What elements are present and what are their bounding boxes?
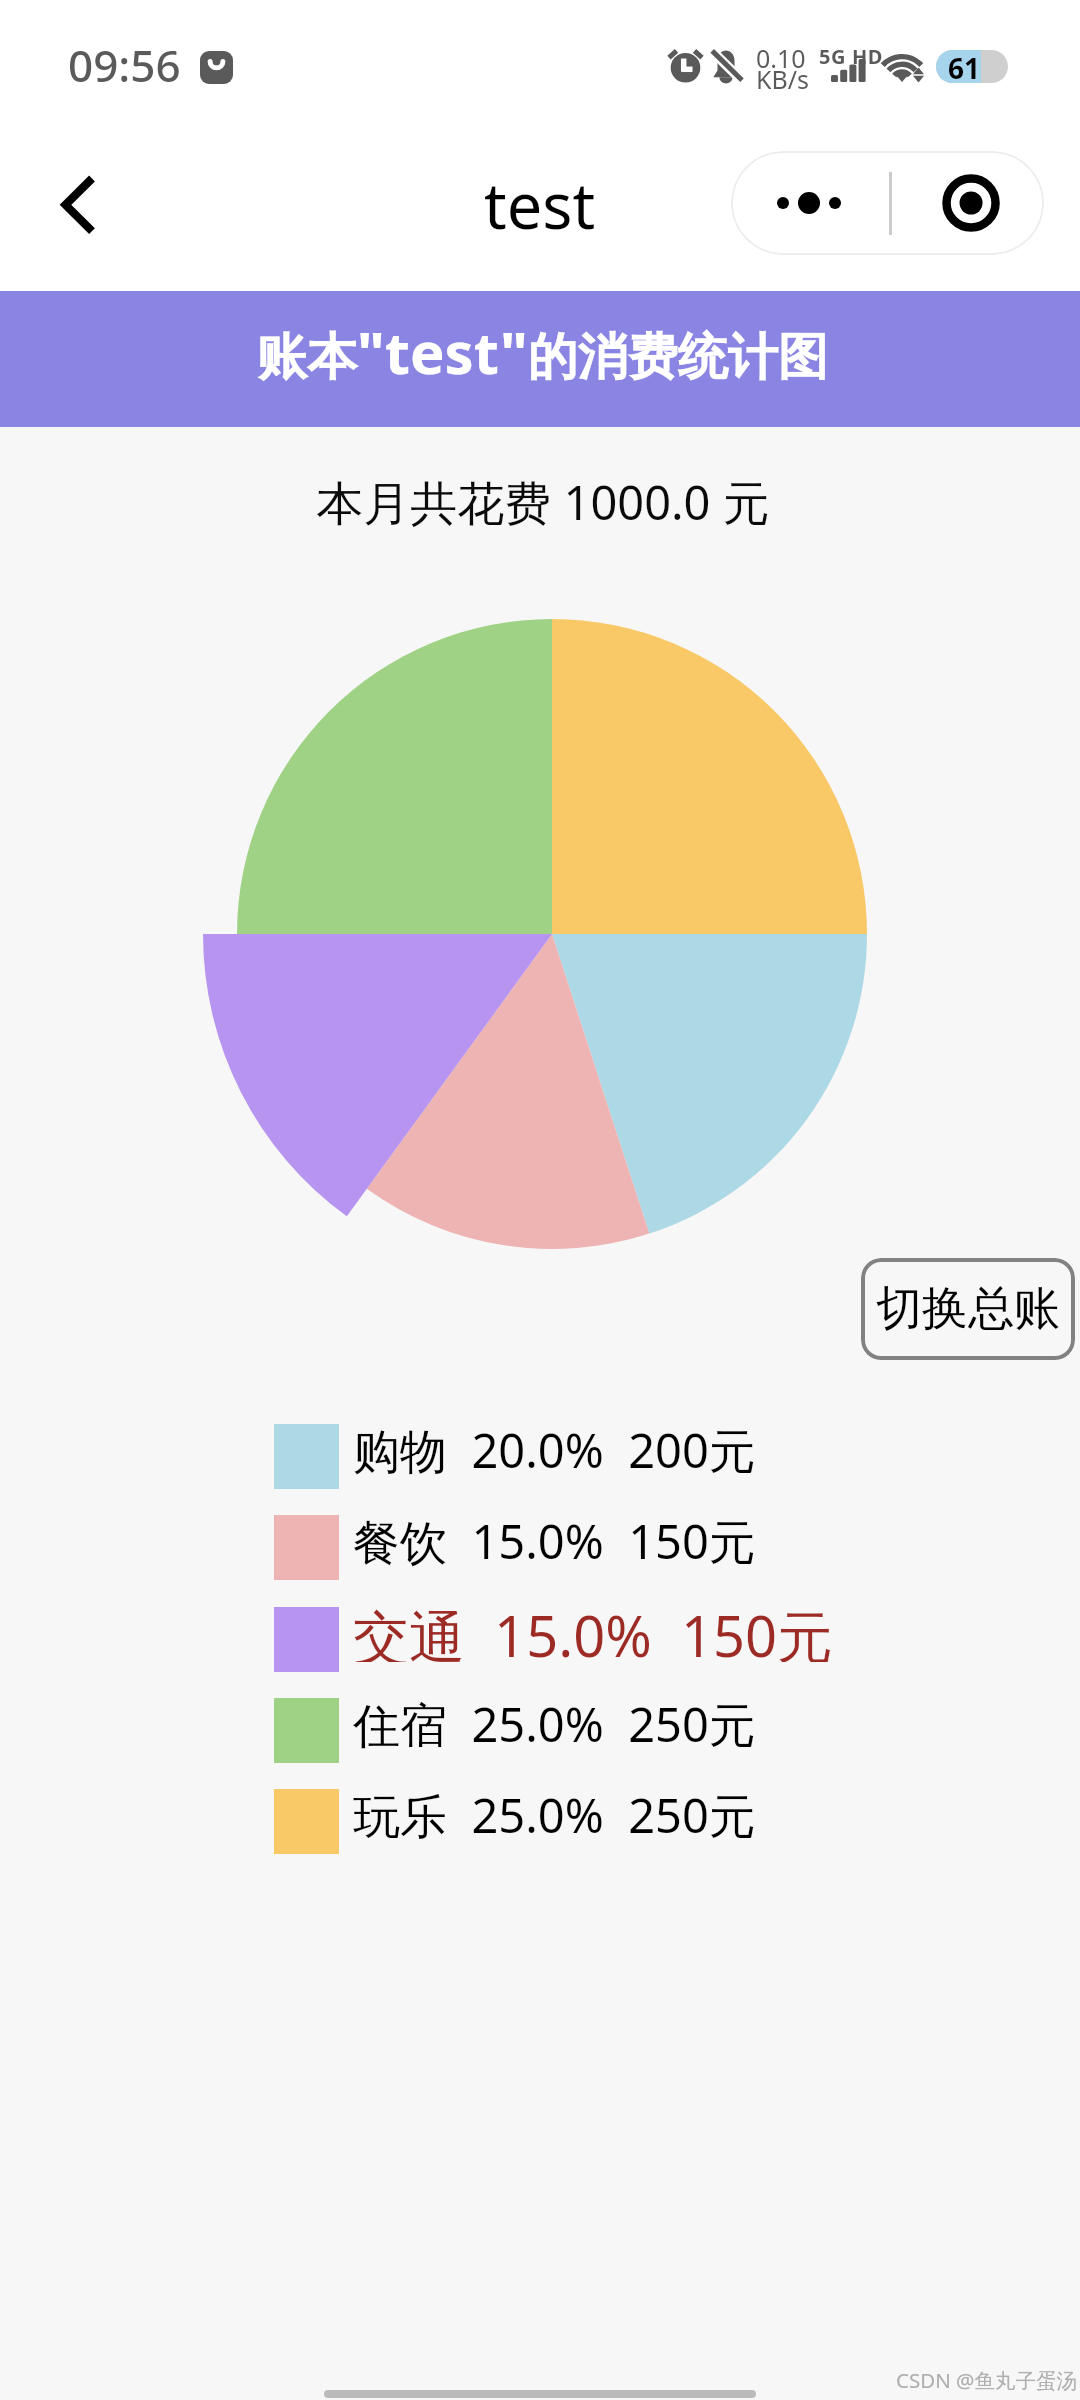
button[interactable]: 消费统计饼图 bbox=[203, 585, 901, 1285]
button[interactable]: Close bbox=[892, 151, 1044, 255]
staticText: 切换总账 bbox=[876, 1280, 1060, 1338]
staticText: test bbox=[484, 162, 596, 248]
staticText: 09:56 bbox=[68, 35, 181, 95]
staticText: 住宿 25.0% 250元 bbox=[353, 1692, 756, 1756]
button[interactable]: 住宿 25.0% 250元 bbox=[274, 1698, 756, 1763]
button[interactable]: More bbox=[731, 151, 889, 255]
staticText: 交通 15.0% 150元 bbox=[353, 1597, 833, 1662]
button[interactable]: 交通 15.0% 150元 bbox=[274, 1607, 833, 1672]
staticText: CSDN @鱼丸子蛋汤 bbox=[896, 2366, 1078, 2394]
staticText: 餐饮 15.0% 150元 bbox=[353, 1509, 756, 1573]
button[interactable]: 切换总账 bbox=[861, 1258, 1075, 1360]
staticText: 本月共花费 1000.0 元 bbox=[3, 470, 1080, 534]
staticText: 5G HD bbox=[819, 43, 884, 70]
staticText: 购物 20.0% 200元 bbox=[353, 1418, 756, 1482]
staticText: 账本"test"的消费统计图 bbox=[257, 312, 828, 391]
staticText: KB/s bbox=[756, 62, 810, 96]
staticText: 玩乐 25.0% 250元 bbox=[353, 1783, 756, 1847]
button[interactable]: 玩乐 25.0% 250元 bbox=[274, 1789, 756, 1854]
button[interactable]: Back bbox=[25, 155, 115, 245]
button[interactable]: 餐饮 15.0% 150元 bbox=[274, 1515, 756, 1580]
button[interactable]: 购物 20.0% 200元 bbox=[274, 1424, 756, 1489]
staticText: 61 bbox=[948, 50, 981, 82]
staticText: 0.10 bbox=[756, 41, 806, 75]
